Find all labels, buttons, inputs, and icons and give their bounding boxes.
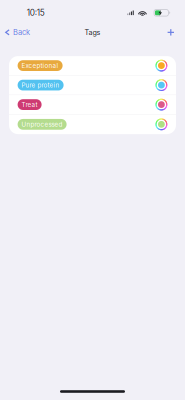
button[interactable]: Back bbox=[0, 24, 30, 41]
button[interactable]: Unprocessed bbox=[9, 115, 176, 134]
staticText: Exceptional bbox=[22, 62, 59, 69]
staticText: 10:15 bbox=[27, 8, 45, 18]
staticText: Treat bbox=[22, 101, 38, 108]
button[interactable]: Pure protein bbox=[9, 76, 176, 95]
button[interactable]: Treat bbox=[9, 95, 176, 115]
staticText: Unprocessed bbox=[22, 121, 63, 128]
button[interactable]: Add tag bbox=[161, 24, 185, 41]
staticText: Tags bbox=[84, 28, 100, 37]
button[interactable]: Exceptional bbox=[9, 56, 176, 76]
staticText: Back bbox=[13, 28, 30, 37]
staticText: Pure protein bbox=[22, 81, 60, 89]
